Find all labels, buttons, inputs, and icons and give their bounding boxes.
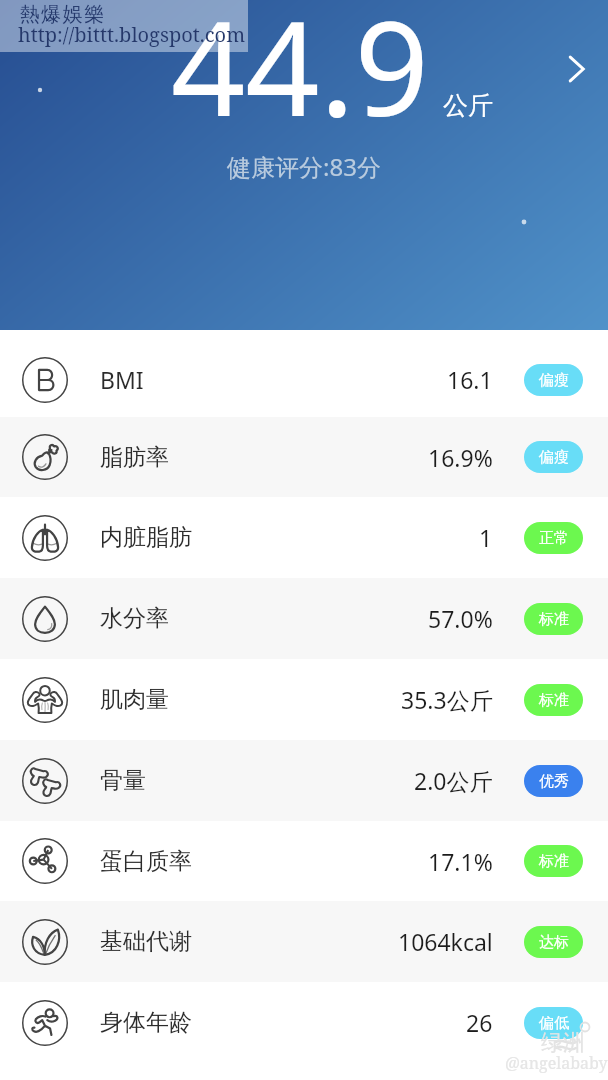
button[interactable]: BMI <box>0 342 608 417</box>
staticText: 16.1 <box>447 364 493 395</box>
button[interactable]: 偏瘦 <box>524 364 583 396</box>
staticText: 健康评分:83分 <box>0 150 608 183</box>
staticText: 1064kcal <box>398 926 493 957</box>
button[interactable]: 标准 <box>524 684 583 716</box>
button[interactable]: 偏瘦 <box>524 441 583 473</box>
button[interactable]: More weight details <box>553 45 601 93</box>
staticText: 16.9% <box>428 442 493 473</box>
staticText: 绿洲 <box>541 1029 585 1057</box>
staticText: 标准 <box>539 852 569 871</box>
staticText: 达标 <box>539 933 569 952</box>
staticText: 偏瘦 <box>539 371 569 390</box>
button[interactable]: 正常 <box>524 522 583 554</box>
staticText: 内脏脂肪 <box>100 523 192 552</box>
staticText: 1 <box>479 522 493 553</box>
button[interactable]: 达标 <box>524 926 583 958</box>
staticText: 优秀 <box>539 772 569 791</box>
button[interactable]: 标准 <box>524 603 583 635</box>
staticText: 标准 <box>539 691 569 710</box>
staticText: 26 <box>466 1007 493 1038</box>
staticText: 肌肉量 <box>100 685 169 714</box>
button[interactable]: 内脏脂肪 <box>0 497 608 578</box>
staticText: 44.9 <box>171 0 429 154</box>
staticText: 57.0% <box>428 603 493 634</box>
button[interactable]: 基础代谢 <box>0 901 608 982</box>
button[interactable]: 标准 <box>524 845 583 877</box>
staticText: 公斤 <box>443 90 493 121</box>
button[interactable]: 骨量 <box>0 740 608 821</box>
button[interactable]: 蛋白质率 <box>0 821 608 901</box>
staticText: 2.0公斤 <box>414 765 493 796</box>
button[interactable]: 身体年龄 <box>0 982 608 1063</box>
staticText: 35.3公斤 <box>401 684 493 715</box>
staticText: 身体年龄 <box>100 1008 192 1037</box>
staticText: 正常 <box>539 529 569 548</box>
staticText: 偏低 <box>539 1014 569 1033</box>
button[interactable]: 肌肉量 <box>0 659 608 740</box>
staticText: http://bittt.blogspot.com <box>18 21 246 48</box>
staticText: 蛋白质率 <box>100 847 192 876</box>
staticText: @angelababy <box>505 1052 608 1074</box>
button[interactable]: 水分率 <box>0 578 608 659</box>
staticText: 脂肪率 <box>100 443 169 472</box>
staticText: 熱爆娛樂 <box>19 2 105 27</box>
staticText: 水分率 <box>100 604 169 633</box>
button[interactable]: 脂肪率 <box>0 417 608 497</box>
staticText: 基础代谢 <box>100 927 192 956</box>
staticText: 偏瘦 <box>539 448 569 467</box>
button[interactable]: 优秀 <box>524 765 583 797</box>
staticText: 17.1% <box>428 846 493 877</box>
button[interactable]: 44.9 <box>0 0 608 330</box>
staticText: 骨量 <box>100 766 146 795</box>
button[interactable]: 偏低 <box>524 1007 583 1039</box>
staticText: BMI <box>100 364 144 395</box>
staticText: 标准 <box>539 610 569 629</box>
